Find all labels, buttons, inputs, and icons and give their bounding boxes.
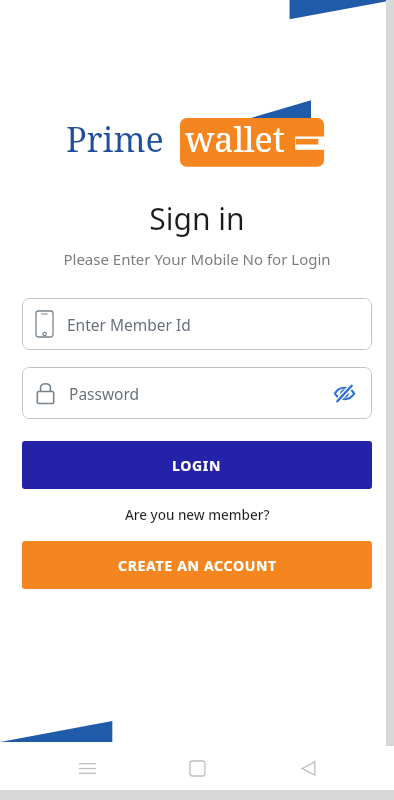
button[interactable]: Recent apps <box>63 746 111 790</box>
staticText: CREATE AN ACCOUNT <box>118 556 277 575</box>
staticText: LOGIN <box>172 456 222 475</box>
button[interactable]: LOGIN <box>22 441 372 489</box>
staticText: wallet <box>185 116 285 162</box>
staticText: Enter Member Id <box>67 314 191 335</box>
staticText: Prime <box>66 116 164 162</box>
button[interactable]: Home <box>173 746 221 790</box>
button[interactable]: Are you new member? <box>125 506 270 524</box>
button[interactable]: Show password <box>330 379 358 407</box>
button[interactable]: CREATE AN ACCOUNT <box>22 541 372 589</box>
button[interactable]: Password <box>22 367 372 419</box>
staticText: Password <box>69 383 140 404</box>
button[interactable]: Enter Member Id <box>22 298 372 350</box>
staticText: Please Enter Your Mobile No for Login <box>63 249 331 269</box>
staticText: Sign in <box>149 198 245 239</box>
button[interactable]: Back <box>284 746 332 790</box>
